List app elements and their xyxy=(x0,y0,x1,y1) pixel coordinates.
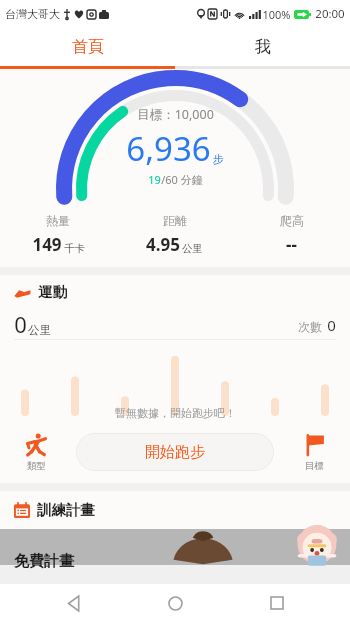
button[interactable]: Back xyxy=(46,584,102,622)
button[interactable]: 我 xyxy=(175,28,350,66)
button[interactable]: Home xyxy=(147,584,203,622)
staticText: 首頁 xyxy=(72,37,104,57)
staticText: 6,936 xyxy=(126,126,211,171)
staticText: /60 分鐘 xyxy=(161,172,203,187)
button[interactable]: 爬高 xyxy=(233,213,350,256)
button[interactable]: 類型 xyxy=(10,433,62,472)
button[interactable]: 熱量 xyxy=(0,213,116,256)
staticText: 0 xyxy=(14,309,27,339)
staticText: 目標 xyxy=(305,460,324,472)
staticText: 100% xyxy=(262,7,291,22)
button[interactable]: 運動 xyxy=(0,275,350,309)
button[interactable]: 開始跑步 xyxy=(76,433,274,471)
staticText: 千卡 xyxy=(64,242,85,255)
button[interactable]: Recents xyxy=(249,584,305,622)
staticText: 暫無數據，開始跑步吧！ xyxy=(115,406,236,420)
staticText: 公里 xyxy=(182,242,203,255)
staticText: -- xyxy=(286,233,297,256)
staticText: 20:00 xyxy=(315,6,345,22)
button[interactable]: 目標 xyxy=(288,433,340,472)
staticText: 我 xyxy=(255,37,271,57)
button[interactable]: 免費計畫 xyxy=(0,529,350,565)
staticText: 4.95 xyxy=(146,233,180,256)
staticText: 開始跑步 xyxy=(145,443,205,462)
staticText: 0 xyxy=(327,315,336,335)
button[interactable]: 訓練計畫 xyxy=(0,491,350,529)
staticText: 149 xyxy=(32,233,62,256)
staticText: 次數 xyxy=(298,319,322,334)
staticText: 爬高 xyxy=(280,213,304,228)
button[interactable]: 首頁 xyxy=(0,28,175,66)
staticText: 19 xyxy=(148,172,161,187)
staticText: 訓練計畫 xyxy=(37,501,95,519)
staticText: 類型 xyxy=(27,460,46,472)
staticText: 運動 xyxy=(38,283,67,301)
staticText: 目標：10,000 xyxy=(137,106,214,123)
staticText: 距離 xyxy=(163,213,187,228)
staticText: 台灣大哥大 xyxy=(5,7,60,21)
staticText: 免費計畫 xyxy=(14,552,74,571)
staticText: 公里 xyxy=(28,323,51,337)
staticText: 步 xyxy=(213,152,224,166)
button[interactable]: 距離 xyxy=(116,213,233,256)
staticText: 熱量 xyxy=(46,213,70,228)
